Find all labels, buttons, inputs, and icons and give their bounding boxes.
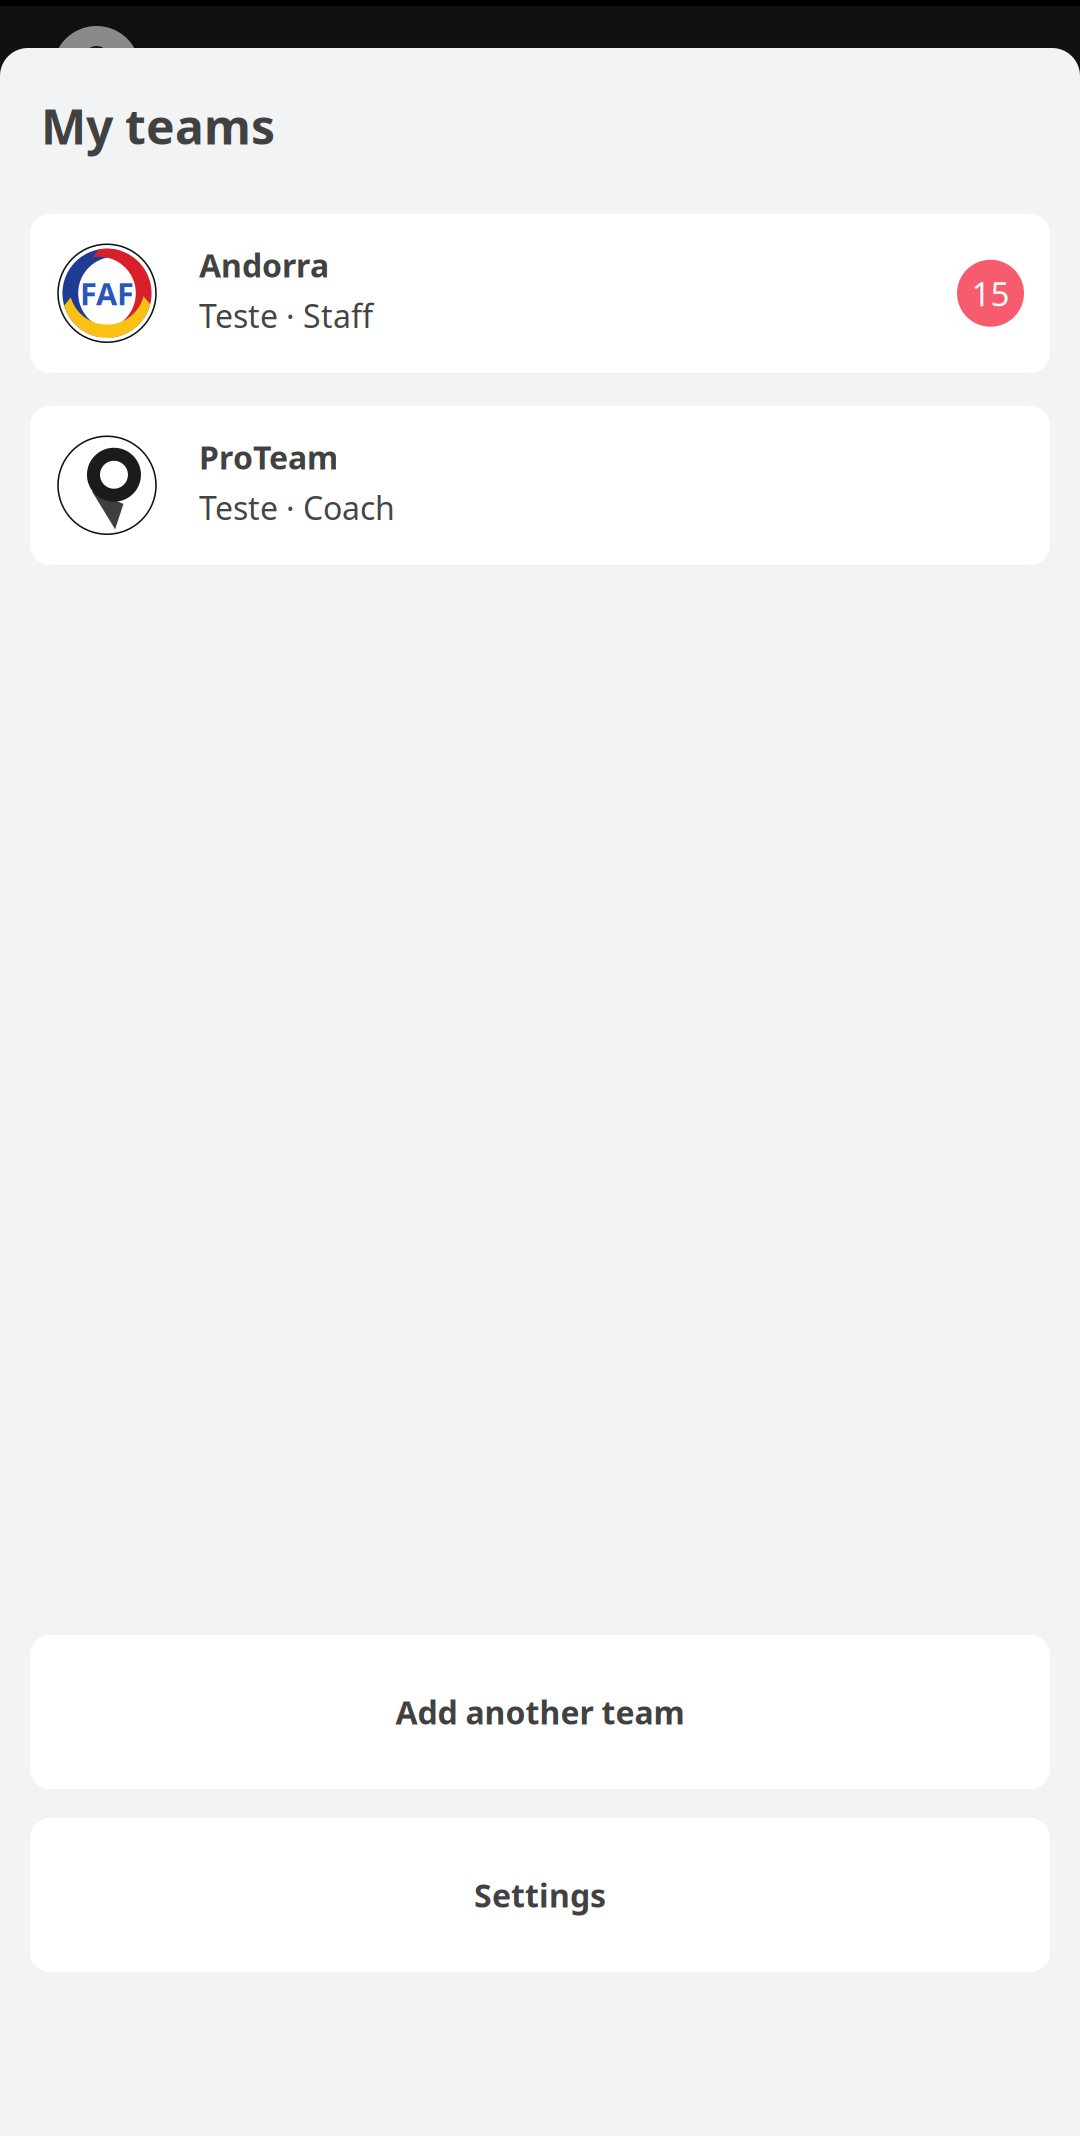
button[interactable]: FAF <box>30 214 1050 373</box>
staticText: Teste · Coach <box>199 486 395 529</box>
staticText: Add another team <box>395 1691 684 1733</box>
button[interactable]: ProTeam <box>30 406 1050 565</box>
staticText: ProTeam <box>199 436 338 478</box>
button[interactable]: Add another team <box>30 1635 1050 1789</box>
staticText: My teams <box>41 94 275 158</box>
staticText: FAF <box>80 273 134 314</box>
staticText: Settings <box>474 1874 606 1916</box>
staticText: Andorra <box>199 244 329 286</box>
button[interactable]: Settings <box>30 1818 1050 1972</box>
staticText: 15 <box>971 271 1009 315</box>
staticText: Teste · Staff <box>199 294 373 337</box>
